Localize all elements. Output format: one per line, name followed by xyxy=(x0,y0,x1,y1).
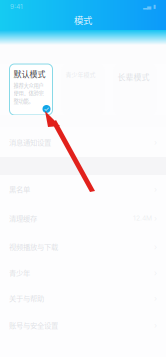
staticText: 视频播放与下载 xyxy=(9,241,58,252)
button[interactable]: 长辈模式 xyxy=(113,64,156,115)
button[interactable]: 模式 xyxy=(0,13,166,27)
button[interactable]: 默认模式 xyxy=(9,64,52,115)
staticText: 9:41 xyxy=(10,2,23,11)
staticText: ▂▄ ▮ xyxy=(143,3,156,10)
staticText: 青少年模式 xyxy=(65,70,95,79)
button[interactable]: 视频播放与下载 xyxy=(0,233,166,260)
staticText: 清理缓存 xyxy=(9,213,37,223)
staticText: 青少年 xyxy=(9,267,30,278)
staticText: 账号与安全设置 xyxy=(9,320,58,330)
staticText: 模式 xyxy=(74,13,92,27)
staticText: 长辈模式 xyxy=(117,71,149,83)
button[interactable]: 账号与安全设置 xyxy=(0,311,166,339)
staticText: 12.4M xyxy=(133,214,152,222)
staticText: 默认模式 xyxy=(13,68,45,80)
staticText: 关于与帮助 xyxy=(9,293,44,303)
staticText: 黑名单 xyxy=(9,184,30,194)
staticText: ✓ xyxy=(43,105,49,113)
staticText: 推荐大众用户 使用，体验完 整功能。 xyxy=(13,82,43,105)
staticText: 消息通知设置 xyxy=(9,137,51,147)
button[interactable]: 黑名单 xyxy=(0,175,166,203)
button[interactable]: 消息通知设置 xyxy=(0,127,166,157)
